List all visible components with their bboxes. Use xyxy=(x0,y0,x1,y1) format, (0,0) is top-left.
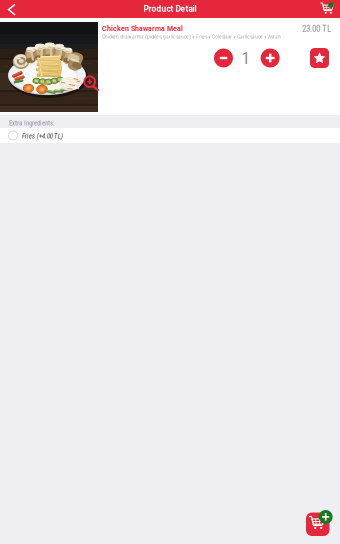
staticText: 23.00 TL xyxy=(302,23,331,34)
staticText: Product Detail xyxy=(143,4,196,14)
button[interactable]: Add to favourites xyxy=(310,48,329,68)
button[interactable]: Zoom photo xyxy=(84,76,100,93)
staticText: 1 xyxy=(241,48,250,68)
button[interactable]: Shopping cart xyxy=(314,0,340,18)
button[interactable]: Back xyxy=(0,0,26,18)
staticText: Chicken shawarma (pickles, garlic sauce)… xyxy=(102,33,281,40)
button[interactable]: Increase quantity xyxy=(261,48,280,67)
button[interactable]: Add to cart xyxy=(303,509,337,541)
staticText: Extra Ingredients: xyxy=(9,119,55,127)
staticText: Fries (+4.00 TL) xyxy=(22,132,63,140)
button[interactable]: Decrease quantity xyxy=(214,48,233,67)
button[interactable]: Fries (+4.00 TL) xyxy=(0,128,340,143)
staticText: Chicken Shawarma Meal xyxy=(102,24,183,33)
